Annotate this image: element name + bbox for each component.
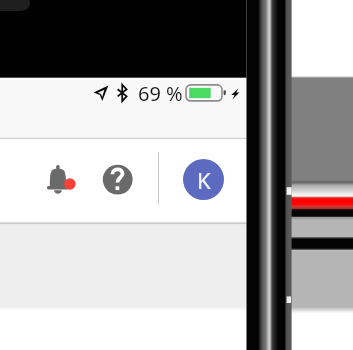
staticText: K <box>197 165 211 195</box>
button[interactable]: Notifications <box>40 161 76 197</box>
staticText: 69 % <box>138 80 183 107</box>
button[interactable]: Help <box>100 161 136 197</box>
button[interactable]: K <box>183 159 224 200</box>
